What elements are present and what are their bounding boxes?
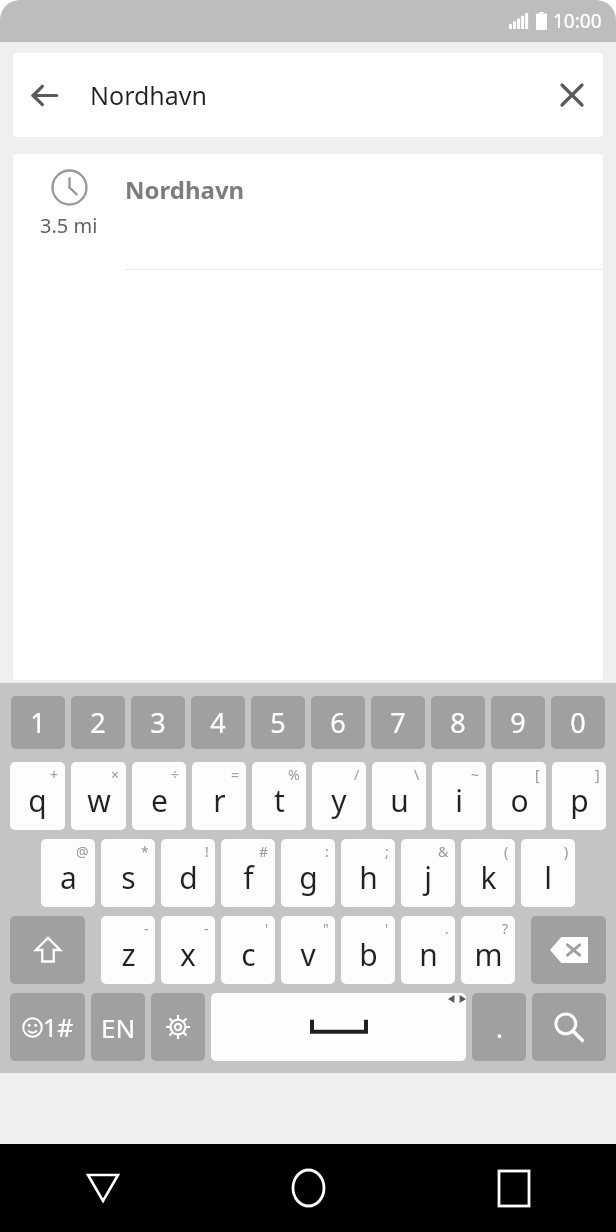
button[interactable]: Home [206,1144,411,1232]
button[interactable]: ~ [432,762,486,830]
staticText: s [121,857,136,898]
button[interactable]: 6 [311,696,365,749]
staticText: ' [265,919,269,938]
staticText: v [300,934,316,975]
button[interactable]: 0 [551,696,605,749]
button[interactable]: 8 [431,696,485,749]
staticText: @ [76,842,89,861]
button[interactable]: 3 [131,696,185,749]
staticText: r [213,780,226,821]
button[interactable]: @ [41,839,95,907]
button[interactable]: Back [13,64,75,126]
button[interactable]: ; [341,839,395,907]
button[interactable]: ] [552,762,606,830]
staticText: 1 [30,704,46,741]
staticText: + [50,765,59,784]
button[interactable]: ' [341,916,395,984]
staticText: " [323,919,329,938]
button[interactable]: 3.5 mi [13,154,603,270]
button[interactable]: Settings [151,993,205,1061]
button[interactable]: - [101,916,155,984]
button[interactable]: Symbols [10,993,85,1061]
button[interactable]: Language [91,993,145,1061]
button[interactable]: ( [461,839,515,907]
button[interactable]: * [101,839,155,907]
staticText: [ [535,765,540,784]
staticText: : [325,842,329,861]
button[interactable]: & [401,839,455,907]
staticText: ' [385,919,389,938]
staticText: h [359,857,378,898]
button[interactable]: Backspace [531,916,606,984]
button[interactable]: Clear [541,64,603,126]
button[interactable]: Back [0,1144,206,1232]
button[interactable]: " [281,916,335,984]
staticText: ~ [471,765,480,784]
staticText: 1# [43,1010,74,1044]
staticText: . [445,919,449,938]
staticText: j [424,857,432,898]
button[interactable]: ÷ [132,762,186,830]
staticText: u [390,780,409,821]
staticText: ; [385,842,389,861]
staticText: . [496,1010,503,1045]
staticText: ) [564,842,569,861]
button[interactable]: Shift [10,916,85,984]
staticText: 7 [390,704,406,741]
staticText: 0 [570,704,586,741]
staticText: ] [595,765,600,784]
staticText: 4 [210,704,226,741]
button[interactable]: - [161,916,215,984]
button[interactable]: 7 [371,696,425,749]
staticText: b [359,934,378,975]
button[interactable]: Period [472,993,526,1061]
staticText: x [180,934,196,975]
staticText: z [121,934,136,975]
staticText: - [204,919,209,938]
staticText: d [179,857,198,898]
button[interactable]: / [312,762,366,830]
button[interactable]: ) [521,839,575,907]
staticText: ( [504,842,509,861]
button[interactable]: : [281,839,335,907]
staticText: ÷ [171,765,180,784]
staticText: # [259,842,269,861]
button[interactable]: ? [461,916,515,984]
staticText: a [60,857,77,898]
staticText: 6 [330,704,346,741]
staticText: 8 [450,704,466,741]
button[interactable]: + [10,762,65,830]
button[interactable]: 4 [191,696,245,749]
button[interactable]: 1 [11,696,65,749]
staticText: 2 [90,704,106,741]
button[interactable]: × [71,762,126,830]
button[interactable]: Back [13,53,603,137]
button[interactable]: = [192,762,246,830]
staticText: i [455,780,463,821]
button[interactable]: 9 [491,696,545,749]
staticText: * [141,842,149,861]
button[interactable]: . [401,916,455,984]
button[interactable]: ' [221,916,275,984]
button[interactable]: # [221,839,275,907]
button[interactable]: Search [532,993,606,1061]
button[interactable]: [ [492,762,546,830]
button[interactable]: ! [161,839,215,907]
button[interactable]: \ [372,762,426,830]
staticText: Nordhavn [125,173,245,206]
staticText: \ [414,765,420,784]
button[interactable]: 5 [251,696,305,749]
staticText: p [570,780,589,821]
staticText: 3.5 mi [40,212,98,239]
staticText: k [480,857,497,898]
button[interactable]: 2 [71,696,125,749]
staticText: 3 [150,704,166,741]
button[interactable]: % [252,762,306,830]
staticText: ? [502,919,509,938]
button[interactable]: Space [211,993,466,1061]
staticText: f [243,857,254,898]
button[interactable]: Recents [411,1144,616,1232]
staticText: y [331,780,347,821]
staticText: t [274,780,285,821]
staticText: 5 [270,704,286,741]
